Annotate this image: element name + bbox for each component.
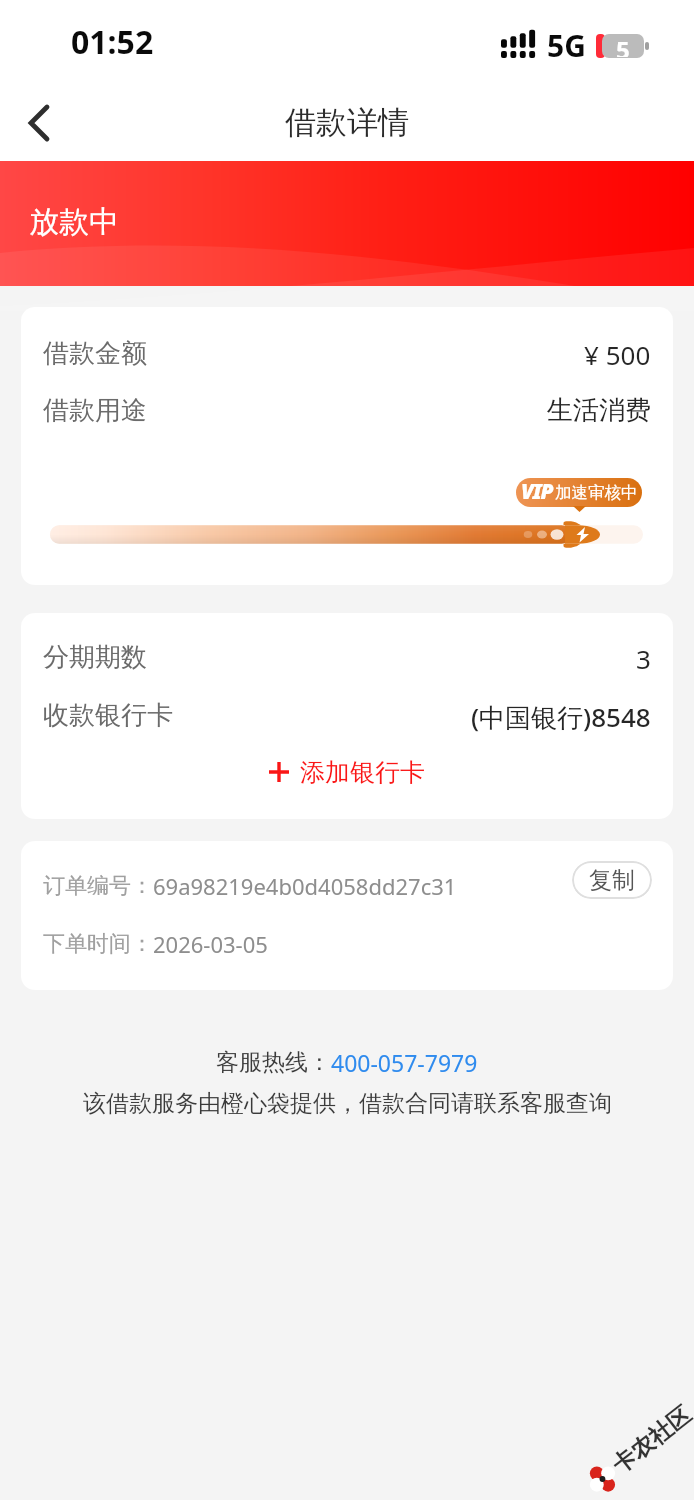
staticText: 下单时间： — [43, 930, 153, 958]
staticText: 添加银行卡 — [300, 757, 425, 788]
staticText: 放款中 — [29, 203, 119, 241]
staticText: 生活消费 — [547, 394, 651, 427]
staticText: 借款金额 — [43, 337, 147, 370]
button[interactable]: 400-057-7979 — [331, 1047, 478, 1078]
staticText: 5G — [547, 25, 586, 66]
staticText: 加速审核中 — [555, 482, 638, 503]
button[interactable]: 复制 — [572, 861, 652, 899]
staticText: 01:52 — [71, 20, 154, 64]
staticText: VIP — [521, 478, 553, 506]
staticText: 客服热线： — [216, 1048, 331, 1077]
staticText: 分期期数 — [43, 641, 147, 674]
staticText: (中国银行)8548 — [471, 699, 651, 732]
staticText: 该借款服务由橙心袋提供，借款合同请联系客服查询 — [83, 1089, 612, 1118]
staticText: 订单编号： — [43, 872, 153, 900]
staticText: 69a98219e4b0d4058dd27c31 — [153, 871, 457, 901]
staticText: 5 — [616, 33, 630, 57]
button[interactable]: VIP — [516, 478, 642, 507]
staticText: ¥ 500 — [584, 337, 651, 370]
staticText: 借款详情 — [285, 103, 409, 142]
staticText: 复制 — [589, 866, 635, 895]
staticText: 3 — [636, 641, 651, 674]
staticText: 卡农社区 — [606, 1400, 694, 1480]
staticText: 收款银行卡 — [43, 699, 173, 732]
button[interactable]: 添加银行卡 — [21, 749, 673, 795]
staticText: 2026-03-05 — [153, 929, 268, 959]
staticText: 借款用途 — [43, 394, 147, 427]
button[interactable]: Back — [16, 100, 62, 146]
